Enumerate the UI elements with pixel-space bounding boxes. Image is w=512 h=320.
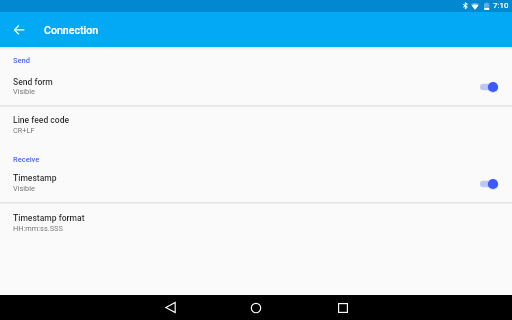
staticText: Connection <box>44 24 99 36</box>
button[interactable]: Navigate up <box>0 12 30 47</box>
staticText: Visible <box>13 184 35 193</box>
staticText: Send <box>13 56 30 65</box>
button[interactable]: Home <box>236 295 276 320</box>
button[interactable] <box>0 165 512 203</box>
button[interactable]: Back <box>150 295 190 320</box>
staticText: Receive <box>13 155 40 164</box>
button[interactable] <box>0 68 512 106</box>
staticText: Visible <box>13 87 35 96</box>
staticText: CR+LF <box>13 126 35 135</box>
staticText: Timestamp format <box>13 213 85 223</box>
staticText: Timestamp <box>13 173 57 183</box>
button[interactable]: Recent apps <box>323 295 363 320</box>
staticText: HH:mm:ss.SSS <box>13 224 63 233</box>
staticText: 7:10 <box>493 1 509 10</box>
button[interactable] <box>0 106 512 144</box>
staticText: Send form <box>13 77 53 87</box>
staticText: Line feed code <box>13 115 70 125</box>
button[interactable] <box>0 204 512 242</box>
